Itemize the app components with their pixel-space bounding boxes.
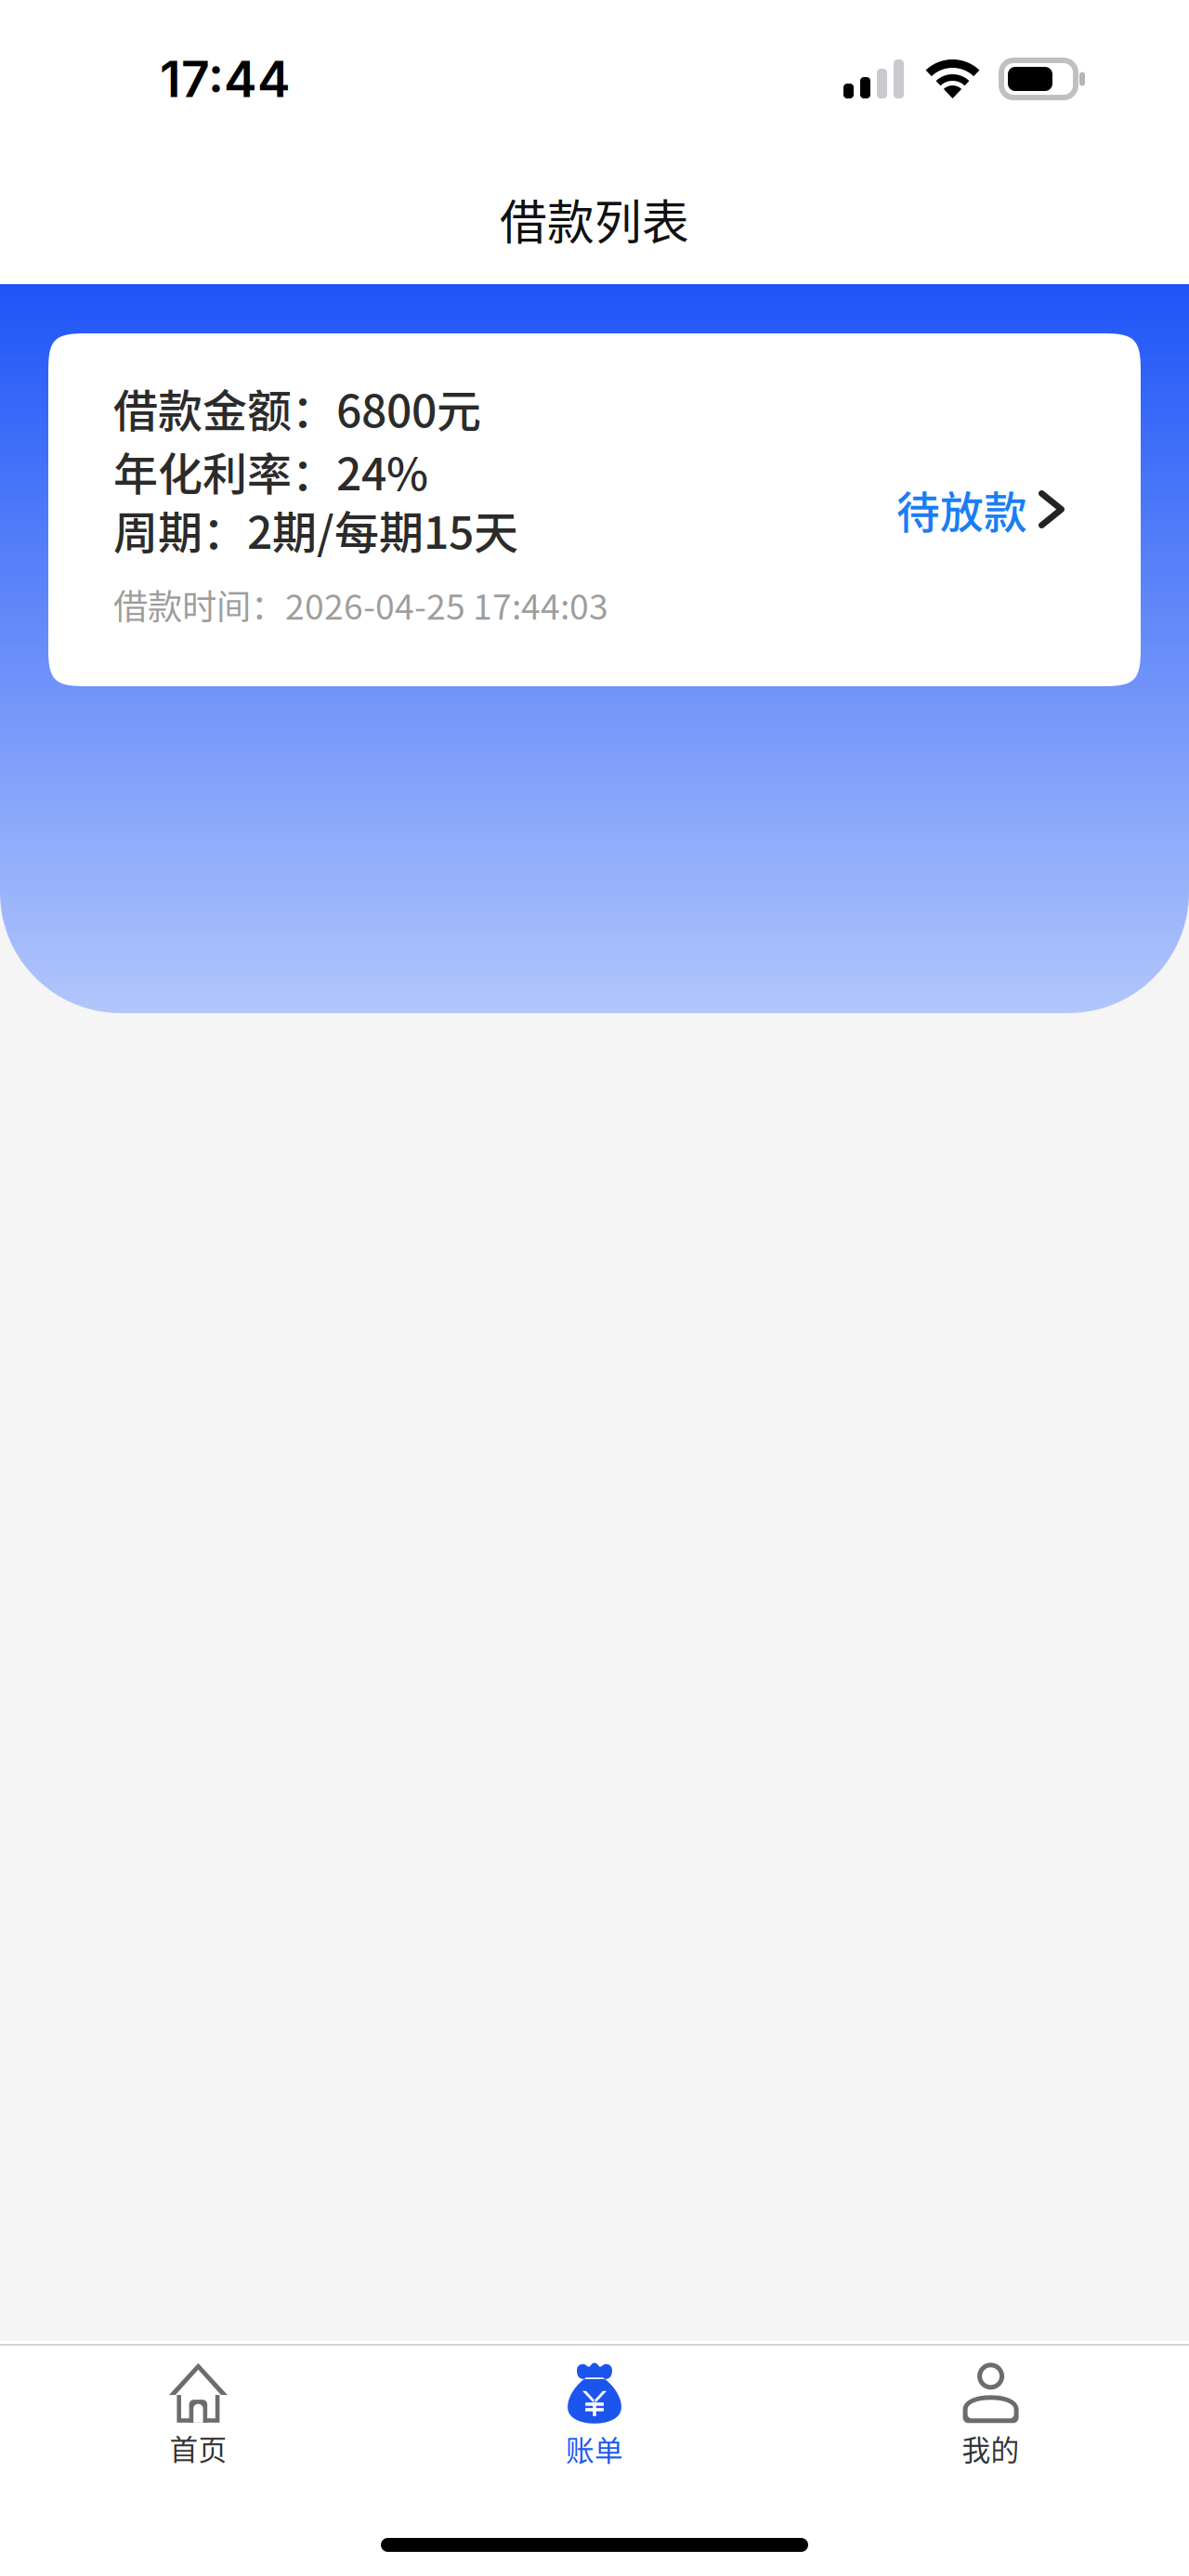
staticText: 年化利率：24% — [113, 438, 428, 503]
staticText: 周期：2期/每期15天 — [113, 497, 518, 562]
staticText: 借款金额：6800元 — [113, 375, 481, 440]
button[interactable]: 账单 — [396, 2346, 793, 2468]
staticText: 17:44 — [160, 49, 291, 109]
button[interactable]: 借款金额：6800元 — [48, 333, 1141, 686]
staticText: 我的 — [962, 2428, 1020, 2469]
staticText: 首页 — [169, 2427, 227, 2468]
staticText: 借款时间：2026-04-25 17:44:03 — [113, 579, 608, 630]
button[interactable]: 首页 — [0, 2346, 396, 2468]
staticText: 账单 — [566, 2428, 623, 2469]
staticText: 借款列表 — [500, 185, 689, 253]
staticText: 待放款 — [896, 478, 1027, 541]
button[interactable]: 我的 — [793, 2346, 1189, 2468]
